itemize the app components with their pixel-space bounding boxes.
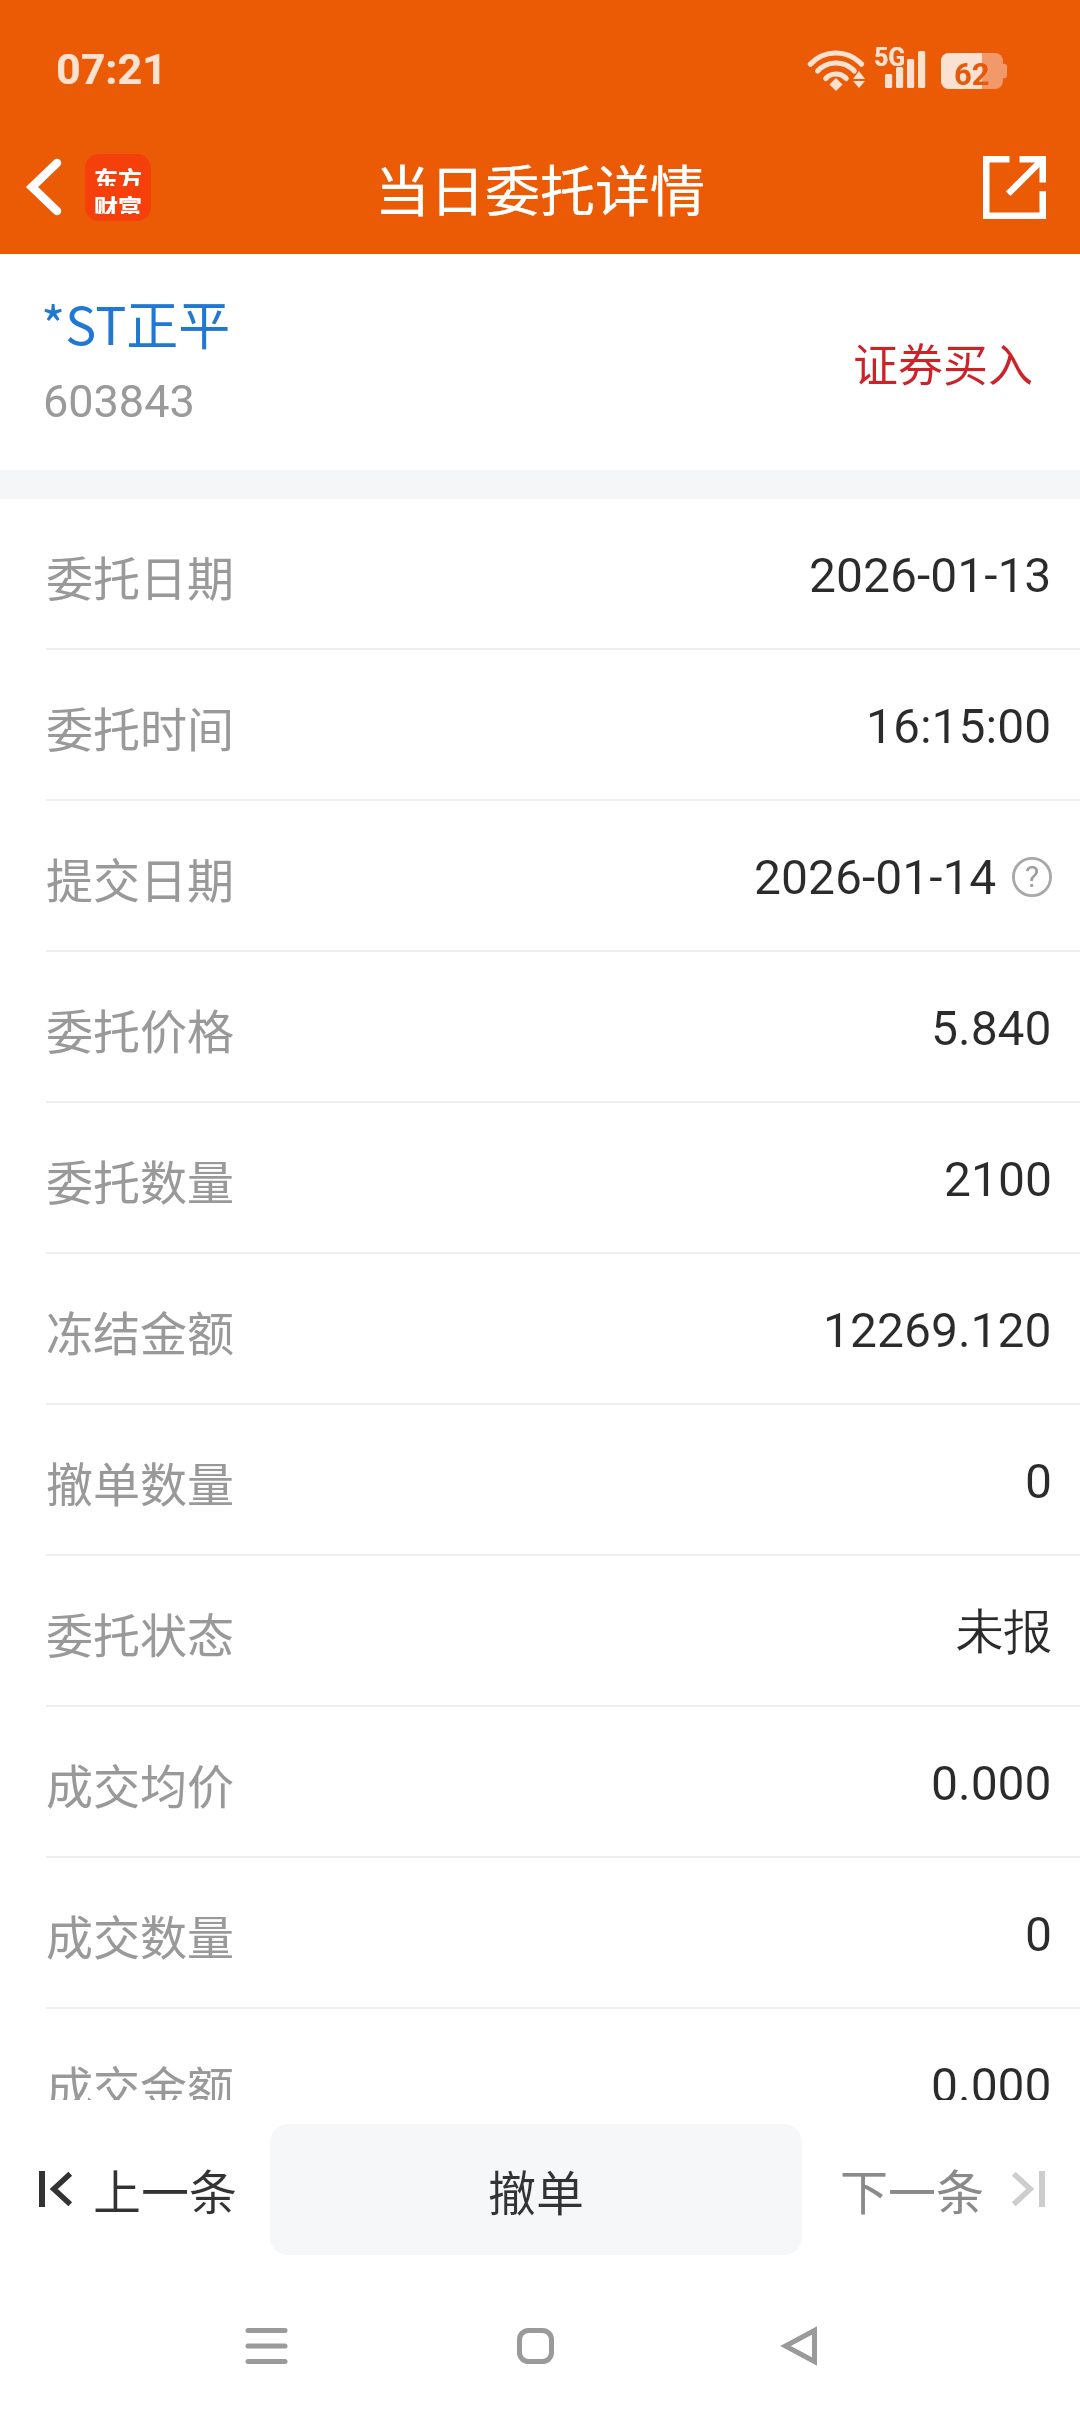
button[interactable]: Recent apps (196, 2291, 336, 2401)
staticText: 2026-01-13 (809, 547, 1052, 603)
button[interactable]: 委托状态 (0, 1556, 1080, 1707)
staticText: 冻结金额 (46, 1296, 234, 1364)
staticText: 603843 (43, 375, 195, 428)
staticText: 0 (1025, 1453, 1052, 1509)
staticText: 东方 (94, 161, 142, 186)
staticText: 证券买入 (853, 330, 1034, 395)
staticText: 提交日期 (46, 843, 234, 911)
staticText: 07:21 (56, 44, 167, 94)
staticText: 委托数量 (46, 1145, 234, 1213)
staticText: 委托状态 (46, 1598, 234, 1666)
button[interactable]: 委托日期 (0, 499, 1080, 650)
button[interactable]: 委托时间 (0, 650, 1080, 801)
staticText: 16:15:00 (866, 698, 1052, 754)
staticText: 上一条 (93, 2154, 238, 2224)
staticText: 0.000 (931, 1755, 1052, 1811)
staticText: 撤单数量 (46, 1447, 234, 1515)
button[interactable]: Home (465, 2291, 605, 2401)
staticText: 12269.120 (823, 1302, 1052, 1358)
button[interactable]: 下一条 (840, 2154, 1045, 2224)
button[interactable]: 冻结金额 (0, 1254, 1080, 1405)
staticText: 0.000 (931, 2057, 1052, 2113)
staticText: 2100 (944, 1151, 1052, 1207)
button[interactable]: Share (960, 136, 1070, 240)
button[interactable]: 东方 (85, 154, 151, 221)
staticText: 撤单 (488, 2155, 585, 2225)
staticText: 当日委托详情 (375, 147, 706, 227)
staticText: 成交均价 (46, 1749, 234, 1817)
button[interactable]: 委托数量 (0, 1103, 1080, 1254)
button[interactable]: 委托价格 (0, 952, 1080, 1103)
staticText: 成交数量 (46, 1900, 234, 1968)
staticText: 62 (954, 56, 990, 92)
button[interactable]: 提交日期 (0, 801, 1080, 952)
staticText: 下一条 (840, 2154, 985, 2224)
button[interactable]: 成交均价 (0, 1707, 1080, 1858)
staticText: 2026-01-14 (754, 849, 997, 905)
button[interactable]: 成交数量 (0, 1858, 1080, 2009)
staticText: 委托日期 (46, 541, 234, 609)
staticText: 0 (1025, 1906, 1052, 1962)
staticText: 财富 (94, 189, 142, 214)
button[interactable]: 成交金额 (0, 2009, 1080, 2160)
staticText: 委托价格 (46, 994, 234, 1062)
button[interactable]: 撤单数量 (0, 1405, 1080, 1556)
staticText: 未报 (956, 1602, 1052, 1662)
button[interactable]: 撤单 (270, 2124, 802, 2255)
staticText: 5.840 (931, 1000, 1052, 1056)
staticText: ? (1025, 859, 1040, 894)
button[interactable]: *ST正平 (0, 254, 1080, 470)
button[interactable]: 上一条 (36, 2154, 238, 2224)
staticText: 成交金额 (46, 2051, 234, 2119)
staticText: *ST正平 (41, 285, 231, 360)
staticText: 委托时间 (46, 692, 234, 760)
button[interactable]: Back (0, 120, 88, 254)
button[interactable]: Back (730, 2291, 870, 2401)
staticText: 5G (874, 43, 906, 72)
